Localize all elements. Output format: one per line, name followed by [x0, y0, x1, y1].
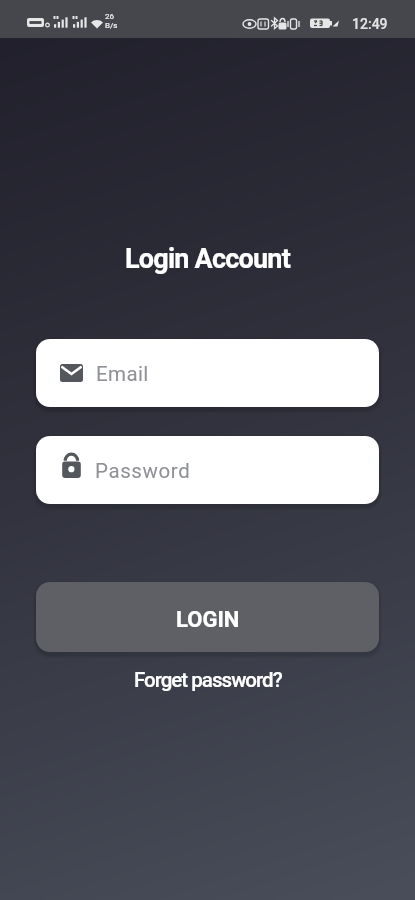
- staticText: Email: [96, 362, 149, 386]
- staticText: Password: [95, 459, 191, 483]
- staticText: LOGIN: [176, 607, 240, 633]
- button[interactable]: Email: [36, 339, 379, 407]
- button[interactable]: LOGIN: [36, 582, 379, 652]
- button[interactable]: Password: [36, 436, 379, 504]
- staticText: 26: [105, 12, 114, 21]
- staticText: 12:49: [352, 16, 388, 32]
- button[interactable]: Forget password?: [126, 666, 290, 694]
- staticText: Forget password?: [134, 668, 282, 692]
- staticText: B/s: [105, 21, 118, 30]
- staticText: Login Account: [125, 243, 290, 275]
